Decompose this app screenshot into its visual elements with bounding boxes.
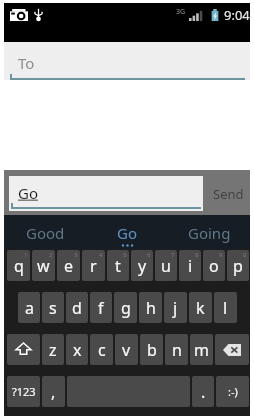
button[interactable]: p — [227, 250, 249, 281]
staticText: t — [115, 255, 121, 277]
staticText: h — [146, 297, 156, 319]
button[interactable]: f — [90, 292, 112, 323]
button[interactable]: v — [115, 334, 138, 365]
staticText: n — [172, 339, 182, 361]
staticText: o — [209, 255, 219, 277]
button[interactable]: x — [66, 334, 88, 365]
button[interactable]: a — [18, 292, 40, 323]
button[interactable]: u — [155, 250, 177, 281]
button[interactable]: d — [66, 292, 88, 323]
button[interactable]: y — [131, 250, 153, 281]
staticText: f — [98, 297, 104, 319]
button[interactable]: s — [42, 292, 64, 323]
staticText: . — [201, 381, 206, 403]
staticText: Go — [18, 183, 38, 203]
staticText: y — [138, 255, 147, 277]
staticText: k — [196, 297, 205, 319]
staticText: 7 — [171, 251, 175, 259]
staticText: 6 — [147, 251, 151, 259]
button[interactable]: n — [165, 334, 188, 365]
staticText: j — [173, 297, 178, 319]
button[interactable]: Good — [4, 215, 86, 249]
button[interactable]: ?123 — [7, 376, 40, 407]
button[interactable]: h — [139, 292, 162, 323]
button[interactable]: Shift — [7, 334, 40, 365]
staticText: 4 — [99, 251, 103, 259]
button[interactable]: , — [42, 376, 65, 407]
staticText: 1 — [24, 251, 28, 259]
staticText: r — [90, 255, 97, 277]
staticText: Go — [117, 223, 137, 243]
button[interactable]: z — [42, 334, 64, 365]
staticText: 9:04 — [224, 6, 250, 24]
staticText: 3 — [74, 251, 78, 259]
button[interactable]: o — [203, 250, 225, 281]
staticText: p — [233, 255, 243, 277]
staticText: g — [121, 297, 131, 319]
button[interactable]: r — [82, 250, 105, 281]
button[interactable]: To — [4, 42, 250, 80]
staticText: , — [51, 381, 56, 403]
staticText: 0 — [243, 251, 247, 259]
staticText: s — [49, 297, 57, 319]
button[interactable]: q — [7, 250, 30, 281]
staticText: 3G — [176, 7, 186, 17]
button[interactable]: l — [214, 292, 237, 323]
staticText: Send — [213, 185, 244, 203]
staticText: ?123 — [12, 384, 36, 399]
staticText: 8 — [195, 251, 199, 259]
staticText: Good — [26, 223, 65, 243]
button[interactable]: Go — [86, 215, 168, 249]
button[interactable]: e — [57, 250, 80, 281]
staticText: 5 — [123, 251, 127, 259]
staticText: m — [194, 339, 209, 361]
staticText: Going — [188, 223, 231, 243]
staticText: u — [161, 255, 171, 277]
staticText: 9 — [219, 251, 223, 259]
button[interactable]: Send — [207, 176, 250, 211]
button[interactable]: t — [107, 250, 129, 281]
staticText: a — [25, 297, 34, 319]
button[interactable]: k — [189, 292, 212, 323]
staticText: l — [223, 297, 228, 319]
staticText: 2 — [49, 251, 53, 259]
staticText: q — [14, 255, 24, 277]
staticText: To — [18, 53, 35, 73]
staticText: d — [72, 297, 82, 319]
staticText: x — [73, 339, 82, 361]
button[interactable]: c — [90, 334, 113, 365]
staticText: i — [188, 255, 193, 277]
button[interactable]: j — [164, 292, 187, 323]
button[interactable]: w — [32, 250, 55, 281]
button[interactable]: g — [114, 292, 137, 323]
staticText: w — [37, 255, 50, 277]
staticText: :-) — [228, 384, 238, 399]
button[interactable]: m — [190, 334, 213, 365]
button[interactable]: . — [192, 376, 214, 407]
staticText: v — [122, 339, 131, 361]
staticText: e — [64, 255, 74, 277]
staticText: b — [147, 339, 157, 361]
button[interactable]: Go — [9, 176, 203, 211]
button[interactable]: Going — [168, 215, 250, 249]
staticText: c — [98, 339, 106, 361]
staticText: z — [49, 339, 57, 361]
button[interactable]: b — [140, 334, 163, 365]
button[interactable]: i — [179, 250, 201, 281]
button[interactable]: Backspace — [215, 334, 249, 365]
button[interactable]: :-) — [216, 376, 249, 407]
